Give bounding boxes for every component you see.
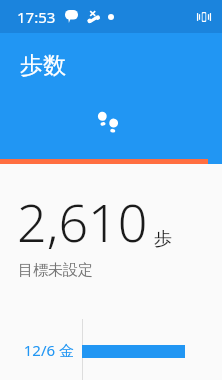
staticText: 歩 (154, 228, 172, 251)
staticText: 目標未設定 (18, 261, 93, 280)
other: Footsteps (92, 105, 126, 139)
button[interactable]: 2,610 (0, 186, 222, 257)
staticText: 歩数 (20, 51, 66, 80)
staticText: 17:53 (17, 7, 56, 27)
staticText: 12/6 金 (23, 340, 74, 360)
button[interactable]: 歩数 (0, 33, 222, 159)
staticText: 2,610 (17, 186, 148, 257)
button[interactable]: 12/6 金 (0, 319, 222, 380)
